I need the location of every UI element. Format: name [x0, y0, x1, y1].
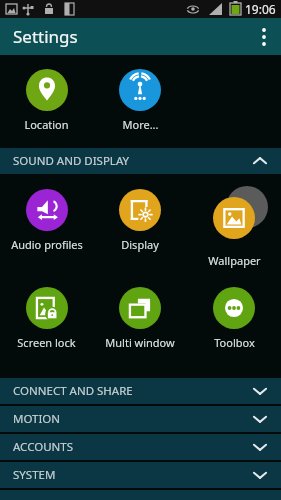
button[interactable]: SYSTEM [0, 462, 281, 488]
button[interactable]: Location [0, 68, 93, 133]
staticText: CONNECT AND SHARE [13, 383, 133, 399]
button[interactable]: Toolbox [187, 286, 281, 351]
staticText: ACCOUNTS [13, 439, 74, 455]
staticText: Multi window [105, 335, 175, 350]
staticText: MOTION [13, 411, 61, 427]
button[interactable]: More... [93, 68, 187, 133]
button[interactable]: ACCOUNTS [0, 434, 281, 460]
staticText: More... [122, 117, 159, 132]
staticText: Toolbox [214, 335, 255, 350]
button[interactable]: Multi window [93, 286, 187, 351]
staticText: Audio profiles [11, 237, 83, 252]
staticText: Settings [13, 25, 78, 48]
button[interactable]: More options [247, 18, 281, 55]
button[interactable]: CONNECT AND SHARE [0, 378, 281, 404]
button[interactable]: MOTION [0, 406, 281, 432]
staticText: 19:06 [245, 1, 276, 17]
button[interactable]: Screen lock [0, 286, 93, 351]
button[interactable]: Wallpaper [187, 188, 281, 269]
staticText: Screen lock [17, 335, 76, 350]
staticText: Wallpaper [208, 253, 261, 268]
button[interactable]: Audio profiles [0, 188, 93, 253]
button[interactable]: SOUND AND DISPLAY [0, 148, 281, 174]
staticText: Location [24, 117, 69, 132]
button[interactable]: Display [93, 188, 187, 253]
staticText: Display [121, 237, 159, 252]
staticText: SYSTEM [13, 467, 56, 483]
staticText: SOUND AND DISPLAY [13, 153, 130, 169]
